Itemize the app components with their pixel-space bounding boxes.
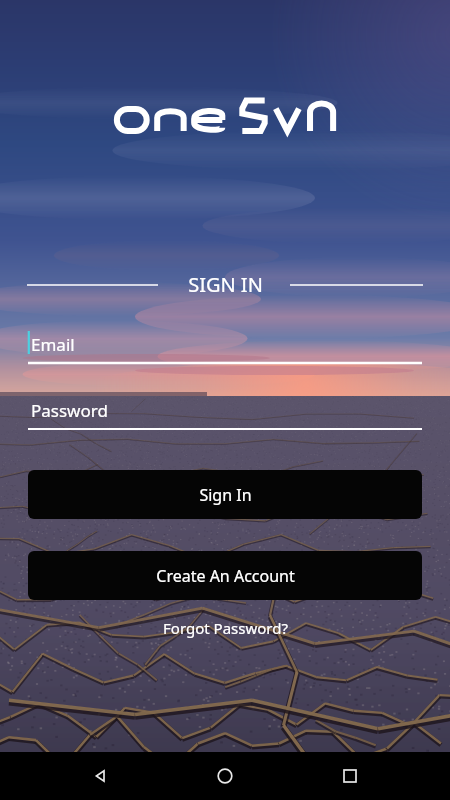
staticText: SIGN IN — [188, 271, 263, 298]
button[interactable]: Recent apps — [326, 752, 374, 800]
button[interactable]: Home — [201, 752, 249, 800]
staticText: Forgot Password? — [163, 618, 288, 638]
staticText: Email — [31, 333, 75, 356]
button[interactable]: Password — [28, 395, 422, 431]
staticText: Create An Account — [156, 565, 295, 587]
button[interactable]: Back — [76, 752, 124, 800]
staticText: Password — [31, 399, 108, 422]
button[interactable]: Sign In — [28, 470, 422, 519]
button[interactable]: Forgot Password? — [0, 615, 450, 641]
staticText: Sign In — [199, 484, 252, 506]
button[interactable]: Create An Account — [28, 551, 422, 600]
button[interactable]: Email — [28, 329, 422, 365]
